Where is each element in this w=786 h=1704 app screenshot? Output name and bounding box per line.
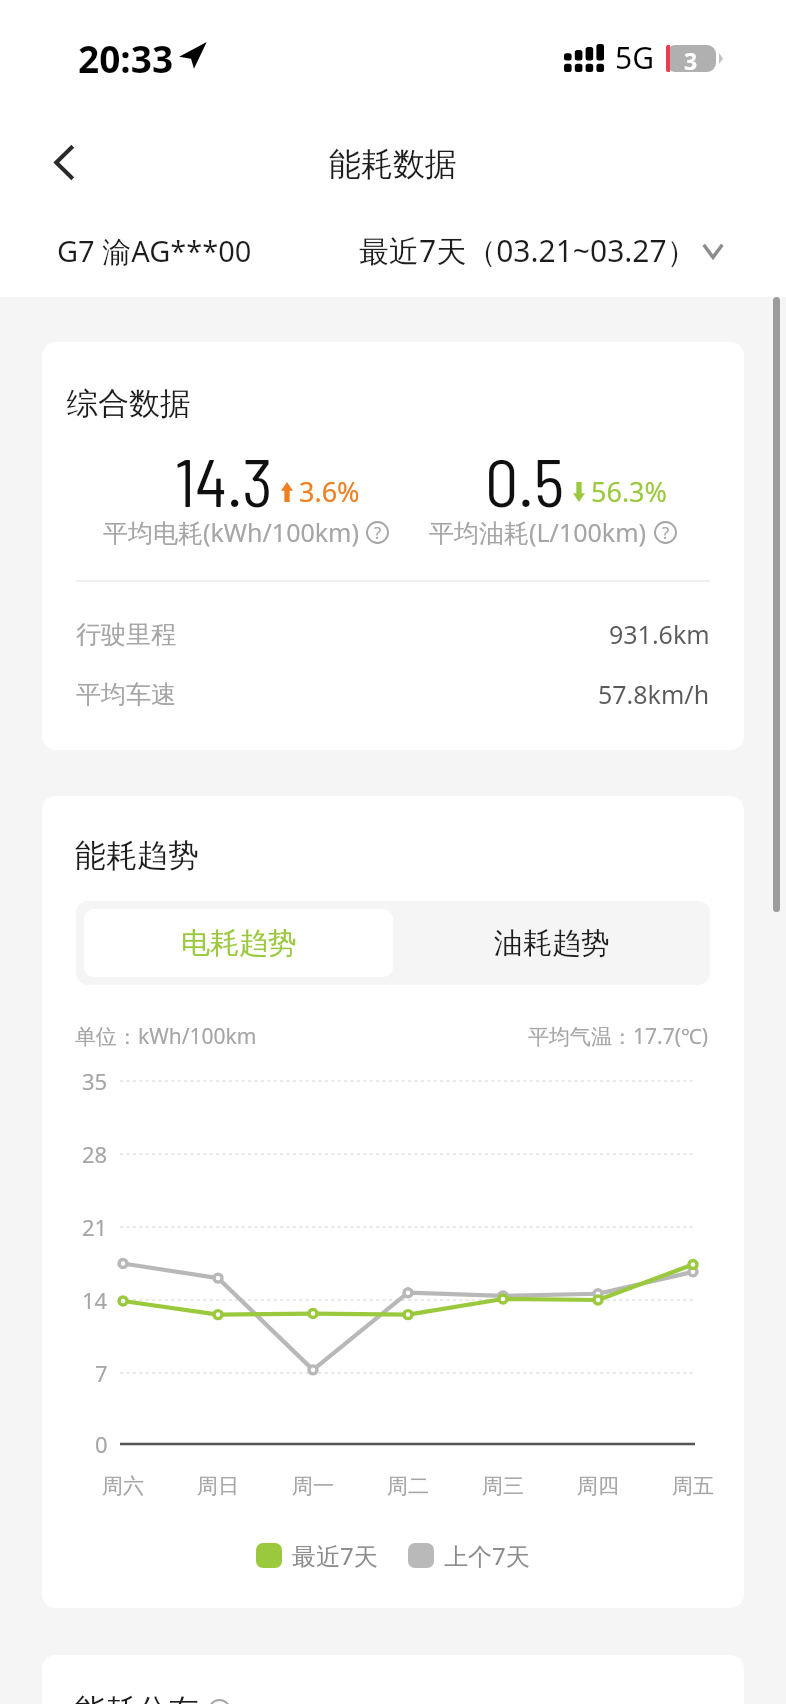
staticText: 7 — [95, 1358, 108, 1388]
staticText: 综合数据 — [67, 384, 191, 423]
staticText: 28 — [82, 1139, 108, 1169]
button[interactable]: 平均车速 — [42, 670, 744, 718]
staticText: 20:33 — [78, 33, 174, 83]
staticText: 931.6km — [609, 617, 710, 651]
staticText: 能耗趋势 — [75, 836, 199, 875]
button[interactable]: 油耗趋势 — [393, 901, 710, 985]
other: Help — [208, 1699, 231, 1704]
other: Help — [654, 521, 677, 544]
button[interactable]: 能耗分布 — [75, 1691, 231, 1704]
staticText: 14 — [82, 1285, 108, 1315]
button[interactable]: Back — [32, 130, 96, 194]
staticText: 21 — [82, 1212, 108, 1242]
other: Help — [366, 521, 389, 544]
staticText: 周六 — [102, 1473, 144, 1499]
staticText: 35 — [82, 1066, 108, 1096]
staticText: 周五 — [672, 1473, 714, 1499]
staticText: 平均车速 — [76, 679, 176, 710]
staticText: 周一 — [292, 1473, 334, 1499]
staticText: 最近7天 — [292, 1539, 378, 1572]
button[interactable]: 平均电耗(kWh/100km) — [103, 515, 389, 549]
button[interactable]: 最近7天（03.21~03.27） — [359, 230, 724, 271]
staticText: G7 渝AG***00 — [57, 231, 252, 271]
staticText: 0 — [95, 1429, 108, 1459]
staticText: 平均气温：17.7(℃) — [528, 1022, 709, 1051]
staticText: 上个7天 — [444, 1539, 530, 1572]
button[interactable]: 行驶里程 — [42, 610, 744, 658]
staticText: 周三 — [482, 1473, 524, 1499]
staticText: 5G — [615, 37, 654, 78]
staticText: 能耗分布 — [75, 1691, 199, 1704]
staticText: 周日 — [197, 1473, 239, 1499]
button[interactable]: 平均油耗(L/100km) — [429, 515, 677, 549]
staticText: 周二 — [387, 1473, 429, 1499]
staticText: 平均电耗(kWh/100km) — [103, 515, 359, 549]
staticText: ? — [374, 521, 382, 544]
staticText: 3 — [684, 45, 698, 72]
staticText: 0.5 — [485, 441, 565, 520]
button[interactable]: 电耗趋势 — [84, 909, 393, 977]
staticText: 14.3 — [175, 441, 273, 520]
staticText: 56.3% — [591, 473, 668, 510]
staticText: 周四 — [577, 1473, 619, 1499]
staticText: 57.8km/h — [598, 677, 710, 711]
staticText: 单位：kWh/100km — [75, 1022, 257, 1051]
staticText: 行驶里程 — [76, 619, 176, 650]
staticText: 电耗趋势 — [181, 925, 297, 962]
staticText: 最近7天（03.21~03.27） — [359, 230, 697, 271]
staticText: ? — [662, 521, 670, 544]
staticText: 油耗趋势 — [494, 925, 610, 962]
staticText: ? — [216, 1699, 224, 1704]
staticText: 能耗数据 — [329, 144, 457, 184]
staticText: 3.6% — [299, 473, 360, 510]
staticText: 平均油耗(L/100km) — [429, 515, 647, 549]
